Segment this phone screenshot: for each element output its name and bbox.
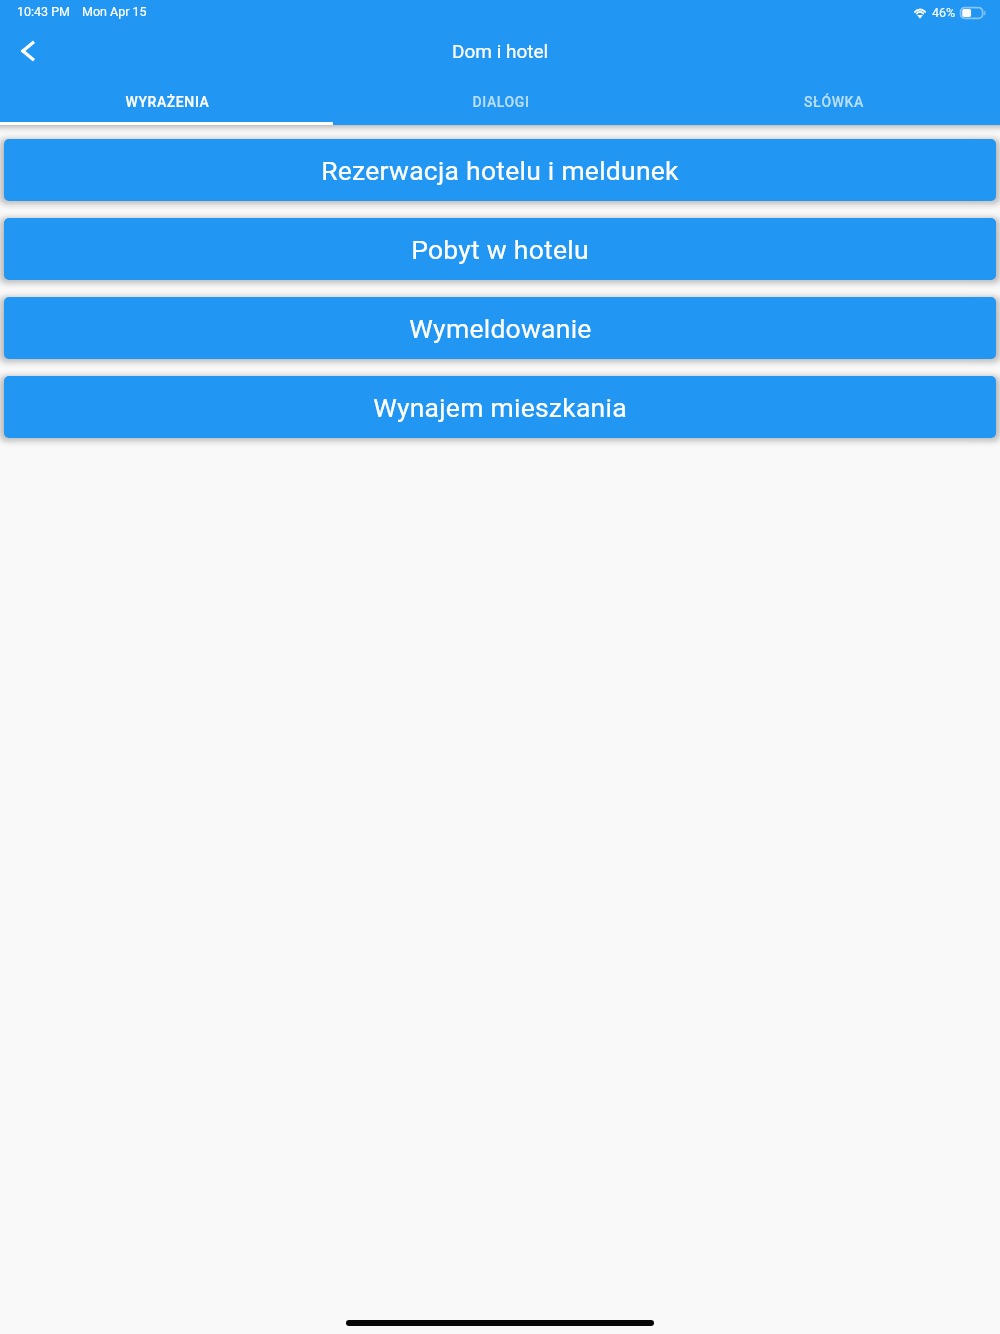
staticText: Wymeldowanie (409, 313, 592, 344)
button[interactable]: Pobyt w hotelu (4, 218, 996, 280)
button[interactable]: Wymeldowanie (4, 297, 996, 359)
staticText: Pobyt w hotelu (411, 234, 589, 265)
staticText: 10:43 PM (17, 4, 71, 19)
button[interactable]: Back (5, 28, 51, 74)
staticText: DIALOGI (472, 94, 530, 110)
staticText: Dom i hotel (452, 40, 549, 62)
staticText: Mon Apr 15 (82, 4, 147, 19)
staticText: Wynajem mieszkania (373, 392, 627, 423)
button[interactable]: WYRAŻENIA (0, 77, 334, 122)
button[interactable]: SŁÓWKA (667, 77, 1000, 122)
button[interactable]: Rezerwacja hotelu i meldunek (4, 139, 996, 201)
staticText: WYRAŻENIA (125, 94, 210, 110)
button[interactable]: Wynajem mieszkania (4, 376, 996, 438)
staticText: 46% (932, 5, 956, 20)
button[interactable]: DIALOGI (334, 77, 667, 122)
staticText: SŁÓWKA (804, 94, 864, 110)
staticText: Rezerwacja hotelu i meldunek (321, 155, 679, 186)
